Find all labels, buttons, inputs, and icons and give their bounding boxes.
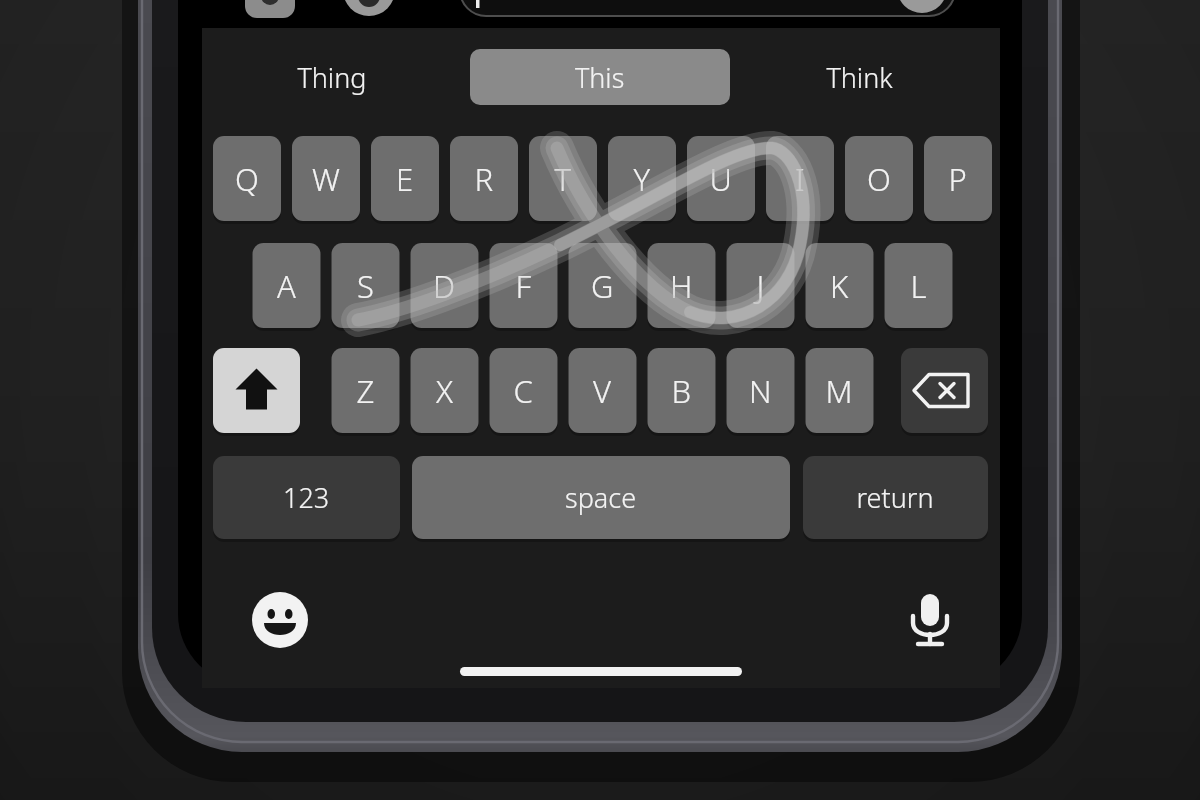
button[interactable]: E: [371, 136, 439, 221]
button[interactable]: J: [726, 243, 794, 328]
button[interactable]: X: [410, 348, 478, 433]
button[interactable]: Thing: [250, 49, 420, 105]
button[interactable]: D: [410, 243, 478, 328]
button[interactable]: M: [805, 348, 873, 433]
button[interactable]: Think: [780, 49, 950, 105]
button[interactable]: Delete: [901, 348, 988, 433]
button[interactable]: space: [412, 456, 790, 539]
button[interactable]: B: [647, 348, 715, 433]
button[interactable]: W: [292, 136, 360, 221]
button[interactable]: This: [470, 49, 730, 105]
button[interactable]: R: [450, 136, 518, 221]
button[interactable]: O: [845, 136, 913, 221]
button[interactable]: H: [647, 243, 715, 328]
button[interactable]: C: [489, 348, 557, 433]
button[interactable]: U: [687, 136, 755, 221]
button[interactable]: K: [805, 243, 873, 328]
button[interactable]: N: [726, 348, 794, 433]
button[interactable]: P: [924, 136, 992, 221]
button[interactable]: Y: [608, 136, 676, 221]
button[interactable]: G: [568, 243, 636, 328]
button[interactable]: A: [252, 243, 320, 328]
button[interactable]: I: [766, 136, 834, 221]
button[interactable]: S: [331, 243, 399, 328]
button[interactable]: F: [489, 243, 557, 328]
button[interactable]: 123: [213, 456, 400, 539]
button[interactable]: Shift: [213, 348, 300, 433]
button[interactable]: V: [568, 348, 636, 433]
button[interactable]: return: [803, 456, 988, 539]
button[interactable]: T: [529, 136, 597, 221]
button[interactable]: L: [884, 243, 952, 328]
button[interactable]: Q: [213, 136, 281, 221]
button[interactable]: Dictation: [902, 592, 960, 650]
button[interactable]: Emoji: [252, 592, 310, 650]
button[interactable]: Z: [331, 348, 399, 433]
